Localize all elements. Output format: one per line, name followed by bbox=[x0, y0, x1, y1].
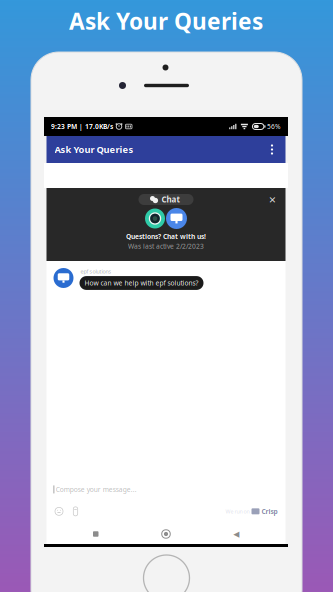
staticText: epf solutions bbox=[80, 268, 111, 275]
staticText: We run on bbox=[225, 508, 249, 515]
button[interactable]: Insert emoji bbox=[50, 505, 67, 518]
staticText: 9:23 PM | 17.0KB/s bbox=[51, 122, 113, 131]
button[interactable]: Home bbox=[145, 524, 187, 544]
staticText: Compose your message... bbox=[56, 485, 137, 494]
button[interactable]: Recent apps bbox=[75, 524, 117, 544]
staticText: 56% bbox=[267, 122, 281, 131]
staticText: Crisp bbox=[261, 507, 277, 516]
staticText: Ask Your Queries bbox=[54, 143, 133, 156]
staticText: How can we help with epf solutions? bbox=[84, 279, 198, 287]
staticText: ◀ bbox=[233, 529, 239, 539]
staticText: ✕ bbox=[268, 195, 276, 205]
button[interactable]: More options bbox=[264, 136, 279, 163]
staticText: Chat bbox=[161, 194, 179, 205]
button[interactable]: Close chat bbox=[265, 193, 279, 207]
button[interactable]: Back bbox=[215, 524, 257, 544]
staticText: Was last active 2/2/2023 bbox=[128, 242, 204, 251]
staticText: Ask Your Queries bbox=[69, 6, 263, 36]
button[interactable]: Attach file bbox=[67, 505, 83, 518]
staticText: Questions? Chat with us! bbox=[126, 232, 206, 241]
